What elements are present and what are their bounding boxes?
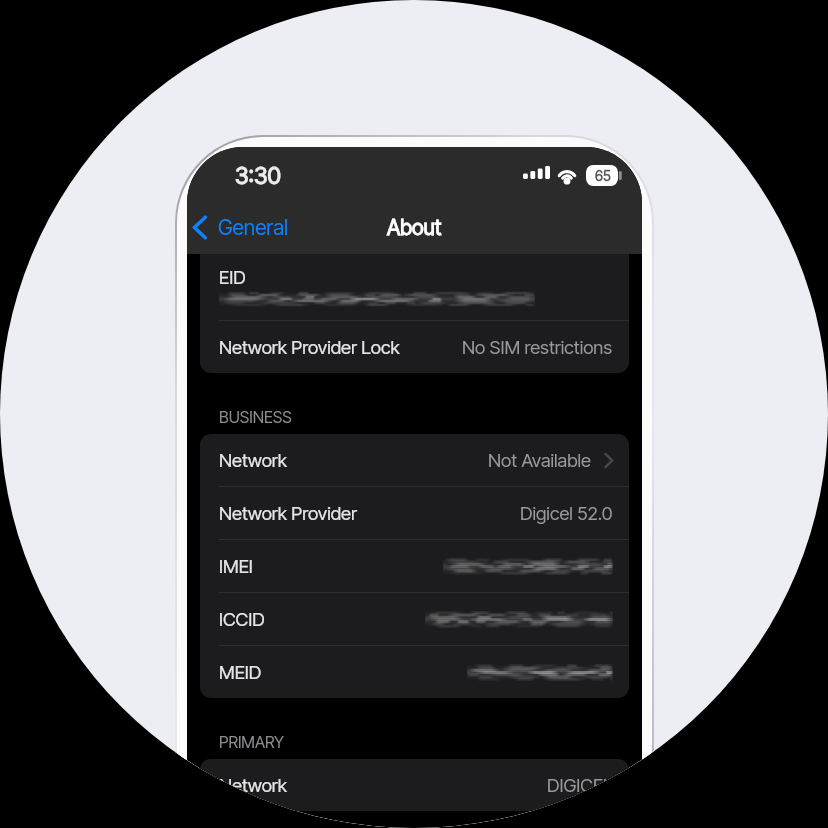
staticText: Digicel 52.0 [520,502,613,524]
staticText: Network [219,449,288,471]
staticText: 65 [595,167,611,184]
button[interactable]: EID [200,254,629,320]
other: Wi-Fi [556,165,578,185]
staticText: Not Available [488,449,591,471]
staticText: DIGICEL [547,774,613,796]
button[interactable]: ICCID [200,593,629,646]
staticText: Network Provider Lock [219,336,400,358]
staticText: EID [219,266,246,288]
button[interactable]: Network [200,434,629,487]
staticText: No SIM restrictions [462,336,613,358]
staticText: About [387,215,442,240]
other: Battery 65 percent [586,165,626,186]
button[interactable]: General [187,207,299,248]
staticText: Network [219,774,288,796]
button[interactable]: MEID [200,646,629,698]
button[interactable]: IMEI [200,540,629,593]
staticText: 3:30 [235,162,281,190]
staticText: General [218,215,289,240]
staticText: MEID [219,661,262,683]
staticText: Network Provider [219,502,357,524]
button[interactable]: Network [200,759,629,811]
button[interactable]: Network Provider Lock [200,321,629,373]
button[interactable]: Network Provider [200,487,629,540]
staticText: IMEI [219,555,253,577]
staticText: BUSINESS [219,407,292,426]
staticText: ICCID [219,608,265,630]
staticText: PRIMARY [219,732,284,751]
